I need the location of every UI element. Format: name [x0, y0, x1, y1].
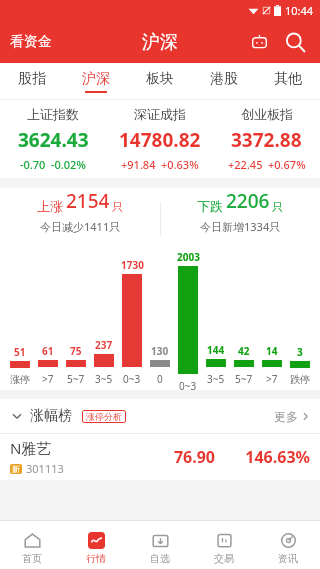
staticText: 3624.43 [18, 127, 89, 153]
staticText: 创业板指 [241, 106, 293, 122]
staticText: 更多 [274, 409, 298, 424]
button[interactable]: 交易 [192, 525, 256, 565]
staticText: 3~5 [207, 372, 225, 386]
staticText: 2154 [66, 188, 110, 214]
button[interactable]: 涨幅榜 [30, 407, 72, 425]
staticText: 146.63% [225, 446, 310, 468]
staticText: 76.90 [135, 446, 215, 468]
staticText: 只 [112, 200, 123, 214]
staticText: 今日减少1411只 [40, 219, 121, 234]
staticText: 75 [70, 344, 82, 358]
button[interactable]: 更多 [274, 409, 310, 424]
button[interactable]: 港股 [192, 63, 256, 99]
staticText: 14 [266, 344, 278, 358]
staticText: 0~3 [123, 372, 141, 386]
staticText: -0.02% [51, 157, 86, 172]
button[interactable]: 看资金 [10, 33, 52, 51]
staticText: 资讯 [278, 552, 298, 565]
staticText: 涨停分析 [86, 411, 122, 422]
staticText: 港股 [210, 70, 238, 88]
staticText: 3372.88 [231, 127, 302, 153]
button[interactable]: 股指 [0, 63, 64, 99]
staticText: 5~7 [67, 372, 85, 386]
button[interactable]: 其他 [256, 63, 320, 99]
staticText: -0.70 [20, 157, 46, 172]
staticText: 51 [14, 345, 26, 359]
button[interactable]: 下跌 [160, 188, 320, 234]
staticText: 涨停 [10, 373, 30, 386]
button[interactable]: 上证指数 [0, 106, 106, 172]
staticText: >7 [42, 372, 54, 386]
staticText: +0.67% [268, 157, 306, 172]
staticText: 今日新增1334只 [200, 219, 281, 234]
staticText: >7 [266, 372, 278, 386]
staticText: 深证成指 [134, 106, 186, 122]
button[interactable]: 板块 [128, 63, 192, 99]
staticText: 0 [157, 372, 163, 386]
staticText: 61 [42, 344, 54, 358]
staticText: 10:44 [285, 3, 314, 18]
button[interactable]: 资讯 [256, 525, 320, 565]
staticText: +22.45 [228, 157, 263, 172]
button[interactable]: 自选 [128, 525, 192, 565]
staticText: 板块 [146, 70, 174, 88]
staticText: 行情 [86, 552, 106, 565]
button[interactable]: 创业板指 [213, 106, 320, 172]
staticText: 下跌 [197, 198, 223, 214]
button[interactable]: 深证成指 [106, 106, 213, 172]
staticText: 交易 [214, 552, 234, 565]
staticText: 只 [272, 200, 283, 214]
button[interactable]: Collapse [10, 409, 24, 423]
staticText: +0.63% [161, 157, 199, 172]
button[interactable]: 行情 [64, 525, 128, 565]
staticText: 上涨 [37, 198, 63, 214]
button[interactable]: 首页 [0, 525, 64, 565]
staticText: 跌停 [290, 373, 310, 386]
staticText: 130 [151, 344, 169, 358]
staticText: 5~7 [235, 372, 253, 386]
staticText: 新 [12, 464, 20, 474]
staticText: 沪深 [82, 70, 110, 88]
button[interactable]: AI assistant [246, 29, 272, 55]
staticText: 0~3 [179, 379, 197, 390]
staticText: 其他 [274, 70, 302, 88]
staticText: 首页 [22, 552, 42, 565]
button[interactable]: 上涨 [0, 188, 160, 234]
staticText: 2206 [226, 188, 270, 214]
staticText: +91.84 [121, 157, 156, 172]
staticText: 301113 [26, 461, 64, 476]
staticText: 沪深 [142, 31, 178, 54]
staticText: 2003 [177, 250, 200, 264]
button[interactable]: N雅艺 [0, 434, 320, 480]
staticText: 股指 [18, 70, 46, 88]
staticText: 42 [238, 344, 250, 358]
staticText: 上证指数 [27, 106, 79, 122]
button[interactable]: 涨停分析 [82, 410, 126, 423]
staticText: 自选 [150, 552, 170, 565]
staticText: 3 [297, 345, 303, 359]
button[interactable]: Search [280, 27, 310, 57]
staticText: 144 [207, 343, 225, 357]
staticText: 3~5 [95, 372, 113, 386]
button[interactable]: 沪深 [64, 63, 128, 99]
staticText: 14780.82 [119, 127, 201, 153]
staticText: 237 [95, 338, 113, 352]
staticText: N雅艺 [10, 438, 52, 458]
staticText: 1730 [121, 258, 144, 272]
